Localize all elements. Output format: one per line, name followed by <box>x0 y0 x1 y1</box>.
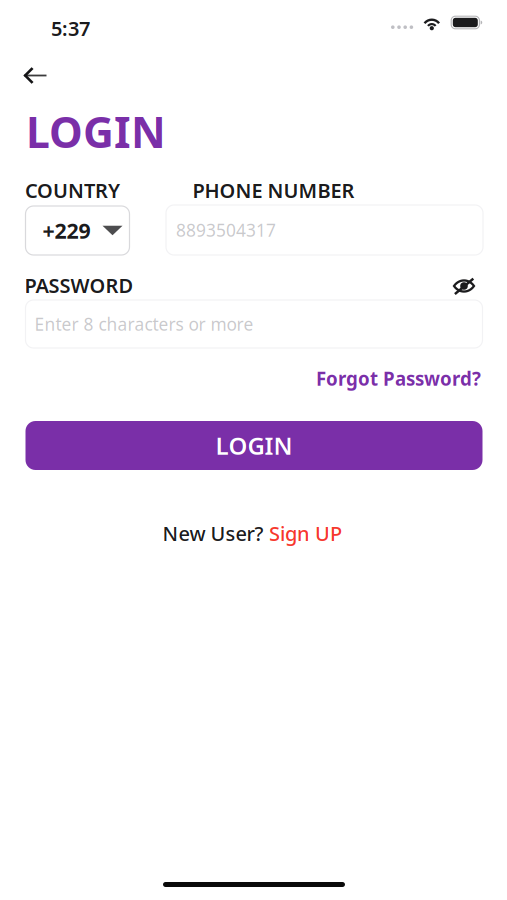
staticText: PASSWORD <box>24 272 133 299</box>
button[interactable]: Forgot Password? <box>316 366 481 391</box>
staticText: Sign UP <box>269 520 342 547</box>
button[interactable]: Enter 8 characters or more <box>25 300 482 348</box>
staticText: Enter 8 characters or more <box>34 312 253 335</box>
staticText: +229 <box>42 216 90 245</box>
staticText: LOGIN <box>215 430 292 461</box>
staticText: PHONE NUMBER <box>192 177 354 204</box>
staticText: New User? <box>162 520 263 547</box>
button[interactable]: Show password <box>447 271 481 301</box>
staticText: Forgot Password? <box>316 366 481 391</box>
staticText: LOGIN <box>26 103 166 160</box>
button[interactable]: +229 <box>25 206 129 255</box>
staticText: 5:37 <box>51 15 90 42</box>
button[interactable]: Back <box>11 55 57 95</box>
button[interactable]: 8893504317 <box>166 205 483 255</box>
button[interactable]: LOGIN <box>25 421 482 470</box>
staticText: COUNTRY <box>25 177 120 204</box>
button[interactable]: Sign UP <box>269 520 342 547</box>
staticText: 8893504317 <box>176 218 276 241</box>
